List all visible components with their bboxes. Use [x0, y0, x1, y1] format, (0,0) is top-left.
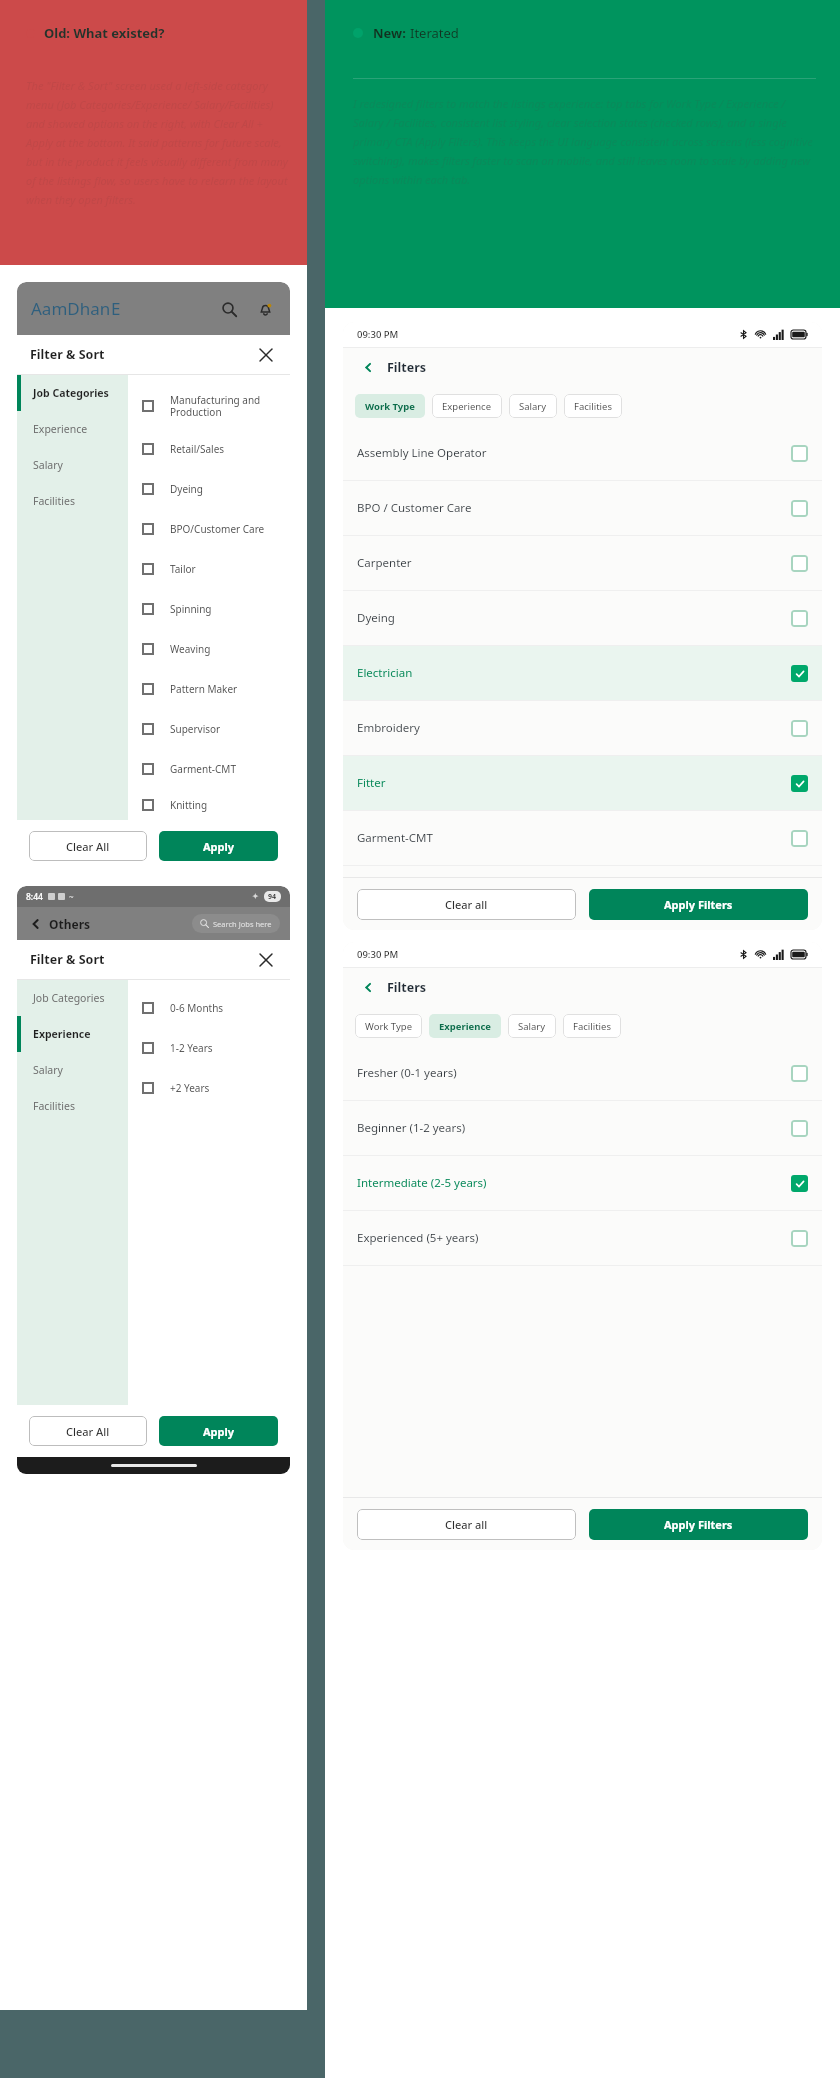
button[interactable]: Garment-CMT [343, 811, 822, 865]
button[interactable]: Dyeing [343, 591, 822, 645]
button[interactable]: Job Categories [17, 980, 128, 1016]
button[interactable]: Experience [17, 411, 128, 447]
button[interactable]: Apply [159, 1416, 278, 1446]
staticText: 09:30 PM [357, 948, 399, 961]
button[interactable]: Weaving [142, 629, 290, 669]
staticText: Garment-CMT [170, 762, 236, 776]
staticText: Apply Filters [664, 1517, 733, 1532]
staticText: Dyeing [170, 482, 203, 496]
button[interactable]: Dyeing [142, 469, 290, 509]
staticText: Spinning [170, 602, 212, 616]
button[interactable]: Apply [159, 831, 278, 861]
button[interactable]: Fresher (0-1 years) [343, 1046, 822, 1100]
button[interactable]: Tailor [142, 549, 290, 589]
button[interactable]: Close [255, 344, 277, 366]
staticText: BPO/Customer Care [170, 522, 265, 536]
staticText: Fitter [357, 775, 386, 791]
button[interactable]: Experienced (5+ years) [343, 1211, 822, 1265]
button[interactable]: Clear All [29, 831, 147, 861]
staticText: Facilities [573, 1020, 611, 1033]
staticText: Apply [203, 839, 235, 854]
staticText: Experience [33, 1027, 91, 1041]
button[interactable]: Supervisor [142, 709, 290, 749]
staticText: Experienced (5+ years) [357, 1230, 479, 1246]
staticText: Salary [519, 400, 547, 413]
staticText: Search Jobs here [213, 919, 272, 929]
button[interactable]: Clear All [29, 1416, 147, 1446]
staticText: Experience [439, 1020, 491, 1033]
button[interactable]: Salary [17, 447, 128, 483]
button[interactable]: Garment-CMT [142, 749, 290, 789]
staticText: Intermediate (2-5 years) [357, 1175, 487, 1191]
staticText: Manufacturing and Production [170, 393, 261, 419]
staticText: Embroidery [357, 720, 420, 736]
button[interactable]: BPO/Customer Care [142, 509, 290, 549]
staticText: +2 Years [170, 1081, 210, 1095]
button[interactable]: 0-6 Months [142, 988, 290, 1028]
staticText: Filter & Sort [30, 346, 105, 363]
staticText: Clear all [445, 1517, 488, 1532]
staticText: 09:30 PM [357, 328, 399, 341]
staticText: 8:44 [26, 891, 43, 903]
button[interactable]: Notifications [254, 298, 276, 320]
staticText: Fresher (0-1 years) [357, 1065, 457, 1081]
button[interactable]: Knitting [142, 789, 290, 820]
button[interactable]: Intermediate (2-5 years) [343, 1156, 822, 1210]
staticText: Work Type [365, 400, 415, 413]
button[interactable]: Salary [17, 1052, 128, 1088]
button[interactable]: Job Categories [17, 375, 128, 411]
button[interactable]: Apply Filters [589, 889, 808, 920]
button[interactable]: Pattern Maker [142, 669, 290, 709]
button[interactable]: Back [27, 915, 45, 933]
staticText: Experience [442, 400, 492, 413]
button[interactable]: Search [218, 298, 240, 320]
button[interactable]: Back [357, 356, 379, 378]
button[interactable]: Experience [429, 1014, 501, 1038]
button[interactable]: BPO / Customer Care [343, 481, 822, 535]
staticText: ~ [69, 891, 74, 902]
button[interactable]: 1-2 Years [142, 1028, 290, 1068]
button[interactable]: Manufacturing and Production [142, 383, 290, 429]
button[interactable]: Facilities [564, 394, 622, 418]
staticText: Dyeing [357, 610, 395, 626]
button[interactable]: Back [357, 976, 379, 998]
staticText: Apply [203, 1424, 235, 1439]
button[interactable]: Work Type [355, 1014, 422, 1038]
button[interactable]: Salary [509, 394, 557, 418]
button[interactable]: Experience [432, 394, 502, 418]
button[interactable]: Clear all [357, 889, 576, 920]
staticText: Pattern Maker [170, 682, 238, 696]
staticText: Knitting [170, 798, 208, 812]
button[interactable]: Apply Filters [589, 1509, 808, 1540]
button[interactable]: Facilities [563, 1014, 621, 1038]
button[interactable]: Electrician [343, 646, 822, 700]
button[interactable]: +2 Years [142, 1068, 290, 1108]
button[interactable]: Salary [508, 1014, 556, 1038]
staticText: Work Type [365, 1020, 412, 1033]
button[interactable]: Experience [17, 1016, 128, 1052]
button[interactable]: Work Type [355, 394, 425, 418]
staticText: Facilities [33, 494, 75, 508]
staticText: Job Categories [33, 386, 109, 400]
button[interactable]: Clear all [357, 1509, 576, 1540]
staticText: New: [373, 24, 410, 42]
button[interactable]: Spinning [142, 589, 290, 629]
button[interactable]: Carpenter [343, 536, 822, 590]
button[interactable]: Fitter [343, 756, 822, 810]
staticText: Experience [33, 422, 88, 436]
staticText: Beginner (1-2 years) [357, 1120, 466, 1136]
button[interactable]: Facilities [17, 1088, 128, 1124]
button[interactable]: Search Jobs here [192, 914, 280, 933]
button[interactable]: Assembly Line Operator [343, 426, 822, 480]
staticText: Carpenter [357, 555, 412, 571]
staticText: Clear all [445, 897, 488, 912]
staticText: Job Categories [33, 991, 105, 1005]
staticText: AamDhan [31, 297, 111, 320]
staticText: Retail/Sales [170, 442, 225, 456]
button[interactable]: Beginner (1-2 years) [343, 1101, 822, 1155]
button[interactable]: Embroidery [343, 701, 822, 755]
button[interactable]: Close [255, 949, 277, 971]
button[interactable]: Facilities [17, 483, 128, 519]
button[interactable]: Retail/Sales [142, 429, 290, 469]
